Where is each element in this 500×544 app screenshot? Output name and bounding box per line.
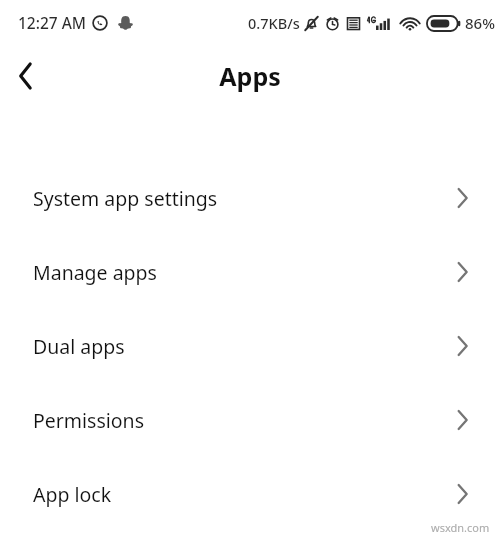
button[interactable]: Back [0, 50, 52, 102]
staticText: App lock [33, 481, 112, 508]
staticText: Apps [219, 59, 281, 93]
button[interactable]: Dual apps [0, 309, 500, 383]
staticText: Dual apps [33, 333, 125, 360]
staticText: 0.7KB/s [248, 13, 300, 33]
staticText: Manage apps [33, 259, 157, 286]
staticText: System app settings [33, 185, 218, 212]
staticText: Permissions [33, 407, 145, 434]
button[interactable]: System app settings [0, 161, 500, 235]
staticText: 12:27 AM [18, 12, 87, 33]
button[interactable]: Permissions [0, 383, 500, 457]
staticText: wsxdn.com [431, 520, 490, 535]
staticText: 86% [465, 13, 495, 33]
button[interactable]: Manage apps [0, 235, 500, 309]
button[interactable]: App lock [0, 457, 500, 531]
